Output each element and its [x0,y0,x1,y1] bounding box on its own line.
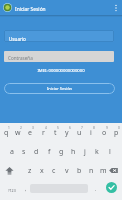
staticText: 5 [57,126,59,130]
staticText: t [54,128,57,138]
button[interactable]: j [79,142,91,161]
staticText: v [65,166,69,176]
button[interactable]: l [104,142,116,161]
staticText: b [77,166,82,176]
button[interactable]: 1 [0,123,12,142]
button[interactable]: Enter [101,178,122,198]
staticText: Usuario [9,36,26,42]
button[interactable]: More options [110,0,122,15]
button[interactable]: ?123 [0,180,24,200]
staticText: d [34,147,39,157]
staticText: 9 [106,126,108,130]
button[interactable]: f [43,142,55,161]
staticText: f [48,147,51,157]
button[interactable]: x [36,161,48,180]
button[interactable]: , [20,180,31,200]
staticText: y [65,128,69,138]
button[interactable]: h [67,142,79,161]
staticText: 0 [118,126,120,130]
button[interactable]: c [48,161,60,180]
button[interactable]: n [85,161,97,180]
button[interactable]: 6 [61,123,73,142]
button[interactable]: a [6,142,18,161]
staticText: h [71,147,76,157]
staticText: l [109,147,111,157]
staticText: 3 [32,126,34,130]
button[interactable]: s [18,142,30,161]
button[interactable]: g [55,142,67,161]
staticText: q [4,128,9,138]
staticText: , [25,186,27,193]
staticText: i [90,128,92,138]
staticText: 7 [81,126,83,130]
button[interactable]: Shift [0,161,19,180]
staticText: r [42,128,45,138]
staticText: s [22,147,26,157]
staticText: k [95,147,99,157]
button[interactable]: 4 [37,123,49,142]
button[interactable]: k [91,142,103,161]
button[interactable]: Usuario [4,30,114,42]
staticText: z [28,166,32,176]
staticText: Contraseña [8,55,33,61]
button[interactable]: 5 [49,123,61,142]
button[interactable]: Backspace [104,161,122,180]
staticText: x [40,166,44,176]
button[interactable]: . [90,180,101,200]
staticText: IMEI: 000000000000000 [0,68,122,74]
staticText: a [10,147,14,157]
staticText: g [59,147,64,157]
button[interactable]: z [24,161,36,180]
staticText: o [102,128,107,138]
staticText: m [100,166,107,176]
staticText: Iniciar Sesión [47,86,73,91]
button[interactable]: 3 [24,123,36,142]
staticText: ?123 [8,188,16,193]
staticText: u [77,128,82,138]
button[interactable]: 2 [12,123,24,142]
staticText: 2 [20,126,22,130]
staticText: n [89,166,94,176]
staticText: . [95,186,97,193]
button[interactable]: v [61,161,73,180]
button[interactable]: b [73,161,85,180]
button[interactable]: 8 [85,123,97,142]
staticText: 4 [45,126,47,130]
staticText: 1 [8,126,10,130]
button[interactable]: 0 [110,123,122,142]
button[interactable]: Iniciar Sesión [4,83,115,94]
staticText: j [84,147,86,157]
button[interactable]: Contraseña [4,51,114,62]
staticText: c [52,166,56,176]
button[interactable]: 9 [98,123,110,142]
staticText: p [114,128,119,138]
staticText: w [15,128,21,138]
button[interactable]: m [97,161,109,180]
staticText: Iniciar Sesión [15,6,46,13]
button[interactable]: d [30,142,42,161]
button[interactable]: 7 [73,123,85,142]
staticText: 8 [93,126,95,130]
staticText: e [28,128,32,138]
staticText: 6 [69,126,71,130]
